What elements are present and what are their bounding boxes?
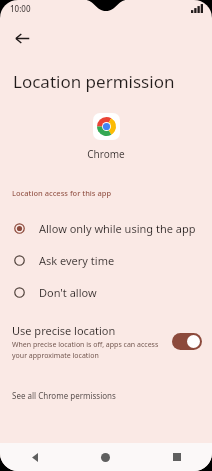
staticText: Location access for this app	[12, 188, 112, 198]
button[interactable]: Don't allow	[0, 276, 212, 308]
staticText: Don't allow	[39, 285, 97, 300]
staticText: See all Chrome permissions	[12, 390, 116, 401]
button[interactable]: Use precise location toggle	[172, 333, 202, 350]
button[interactable]: Back	[0, 443, 70, 471]
staticText: Chrome	[0, 147, 212, 161]
button[interactable]: See all Chrome permissions	[0, 387, 212, 404]
staticText: 10:00	[10, 3, 31, 14]
button[interactable]: Home	[70, 443, 141, 471]
staticText: Ask every time	[39, 253, 115, 268]
button[interactable]: Use precise location	[0, 318, 212, 365]
button[interactable]: Recent apps	[141, 443, 212, 471]
button[interactable]: Allow only while using the app	[0, 212, 212, 244]
staticText: When precise location is off, apps can a…	[12, 340, 166, 360]
staticText: Use precise location	[12, 323, 116, 338]
button[interactable]: Ask every time	[0, 244, 212, 276]
button[interactable]: Back	[4, 20, 40, 56]
staticText: Location permission	[13, 70, 175, 93]
staticText: Allow only while using the app	[39, 221, 196, 236]
